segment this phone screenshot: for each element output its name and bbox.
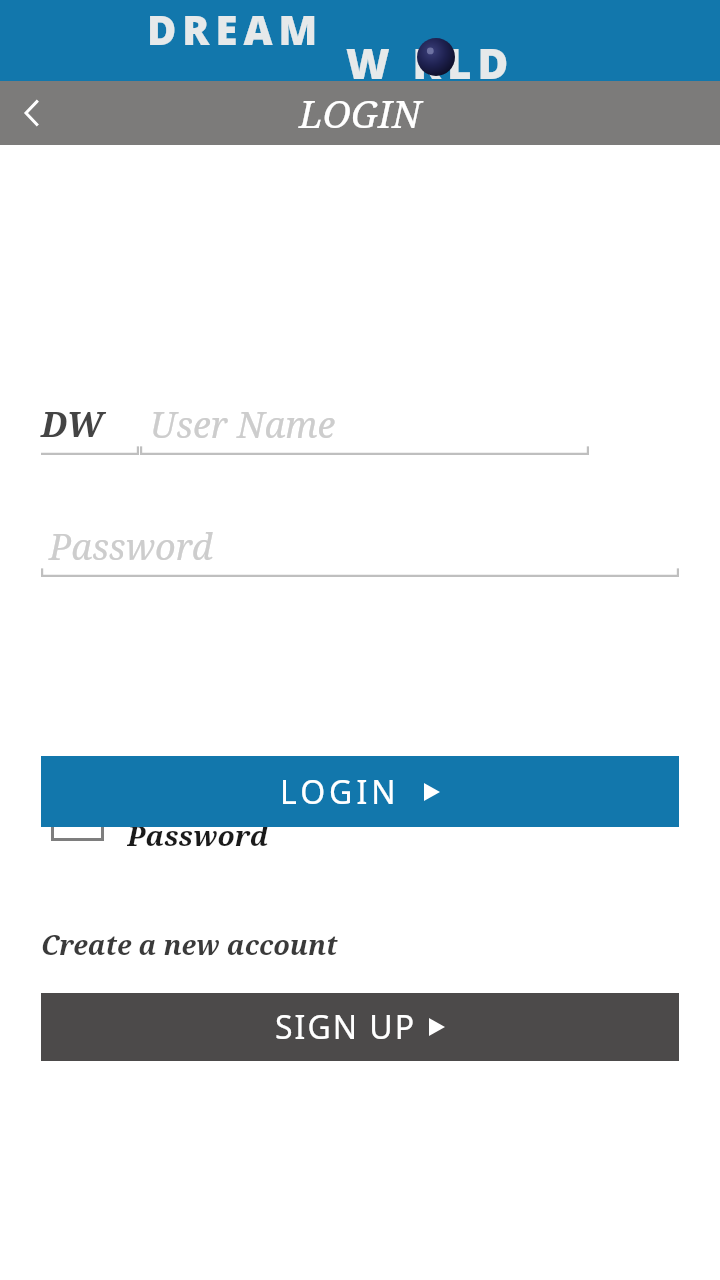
staticText: DREAM bbox=[147, 2, 324, 56]
staticText: SIGN UP bbox=[275, 1005, 417, 1049]
staticText: DW bbox=[41, 401, 103, 447]
button[interactable]: Create a new account bbox=[41, 926, 338, 963]
button[interactable]: Show Password bbox=[41, 778, 331, 850]
button[interactable]: SIGN UP bbox=[41, 993, 679, 1061]
button[interactable]: DW bbox=[41, 392, 139, 456]
staticText: W RLD bbox=[346, 34, 515, 91]
staticText: Password bbox=[49, 522, 213, 571]
button[interactable]: User Name bbox=[140, 392, 589, 456]
button[interactable]: Back bbox=[0, 81, 64, 145]
button[interactable]: Password bbox=[41, 514, 679, 578]
staticText: Show Password bbox=[127, 778, 331, 850]
button[interactable]: LOGIN bbox=[41, 756, 679, 827]
staticText: LOGIN bbox=[299, 87, 421, 139]
staticText: User Name bbox=[150, 400, 336, 449]
staticText: LOGIN bbox=[280, 770, 400, 814]
